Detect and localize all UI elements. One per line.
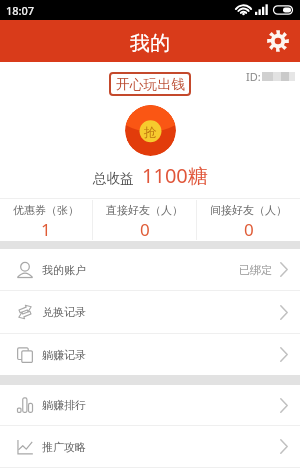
staticText: 躺赚记录 xyxy=(42,348,86,362)
staticText: 0 xyxy=(244,218,254,241)
staticText: ID: xyxy=(246,69,261,84)
button[interactable]: 兑换记录 xyxy=(0,291,300,333)
staticText: 我的 xyxy=(130,31,170,56)
button[interactable]: 直接好友（人） xyxy=(93,199,196,241)
staticText: 优惠券（张） xyxy=(13,203,79,217)
staticText: 总收益 xyxy=(93,170,134,187)
button[interactable]: 躺赚排行 xyxy=(0,385,300,425)
staticText: 已绑定 xyxy=(239,263,272,277)
button[interactable]: 推广攻略 xyxy=(0,426,300,467)
button[interactable]: 间接好友（人） xyxy=(197,199,300,241)
button[interactable]: 抢红包 xyxy=(125,105,176,156)
staticText: 直接好友（人） xyxy=(106,203,183,217)
button[interactable]: 开心玩出钱 xyxy=(109,72,191,96)
staticText: 推广攻略 xyxy=(42,440,86,454)
button[interactable]: 我的账户 xyxy=(0,249,300,290)
button[interactable]: Settings xyxy=(262,25,294,57)
button[interactable]: 优惠券（张） xyxy=(0,199,92,241)
staticText: 1 xyxy=(41,218,51,241)
staticText: 18:07 xyxy=(6,3,35,18)
staticText: 抢 xyxy=(144,124,157,140)
staticText: 开心玩出钱 xyxy=(116,76,185,93)
staticText: 躺赚排行 xyxy=(42,398,86,412)
button[interactable]: 躺赚记录 xyxy=(0,334,300,375)
staticText: 间接好友（人） xyxy=(210,203,287,217)
staticText: 我的账户 xyxy=(42,263,86,277)
staticText: 兑换记录 xyxy=(42,305,86,319)
staticText: 1100糖 xyxy=(142,162,208,189)
staticText: 0 xyxy=(140,218,150,241)
